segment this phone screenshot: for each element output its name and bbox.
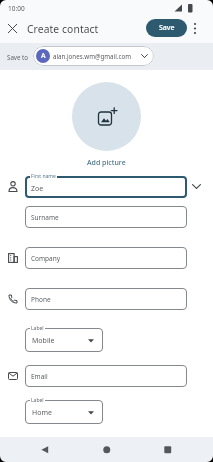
staticText: Phone [31,295,51,304]
button[interactable] [25,206,187,228]
staticText: Company [31,254,61,263]
staticText: Save [159,23,175,33]
button[interactable]: Add picture [87,158,126,168]
button[interactable] [25,247,187,269]
staticText: Save to [7,53,29,61]
button[interactable] [8,24,17,33]
button[interactable]: Save [146,19,187,37]
button[interactable] [25,400,103,424]
button[interactable] [72,82,141,151]
staticText: Create contact [27,22,99,36]
staticText: Home [32,408,52,418]
staticText: Surname [31,213,59,222]
button[interactable] [41,446,49,454]
staticText: First name [31,173,56,180]
button[interactable] [25,288,187,310]
button[interactable] [25,365,187,387]
staticText: Zoe [31,184,44,194]
staticText: Label [31,397,44,404]
button[interactable] [164,446,172,454]
button[interactable] [103,446,111,454]
staticText: Mobile [32,336,55,346]
staticText: Email [31,372,48,381]
button[interactable] [193,22,197,35]
button[interactable]: A [33,46,154,66]
staticText: 10:00 [8,4,25,13]
staticText: Label [31,325,44,332]
staticText: A [41,51,46,61]
button[interactable] [25,328,103,352]
button[interactable] [192,184,201,189]
staticText: alan.jones.wm@gmail.com [53,52,131,60]
button[interactable] [25,176,187,198]
